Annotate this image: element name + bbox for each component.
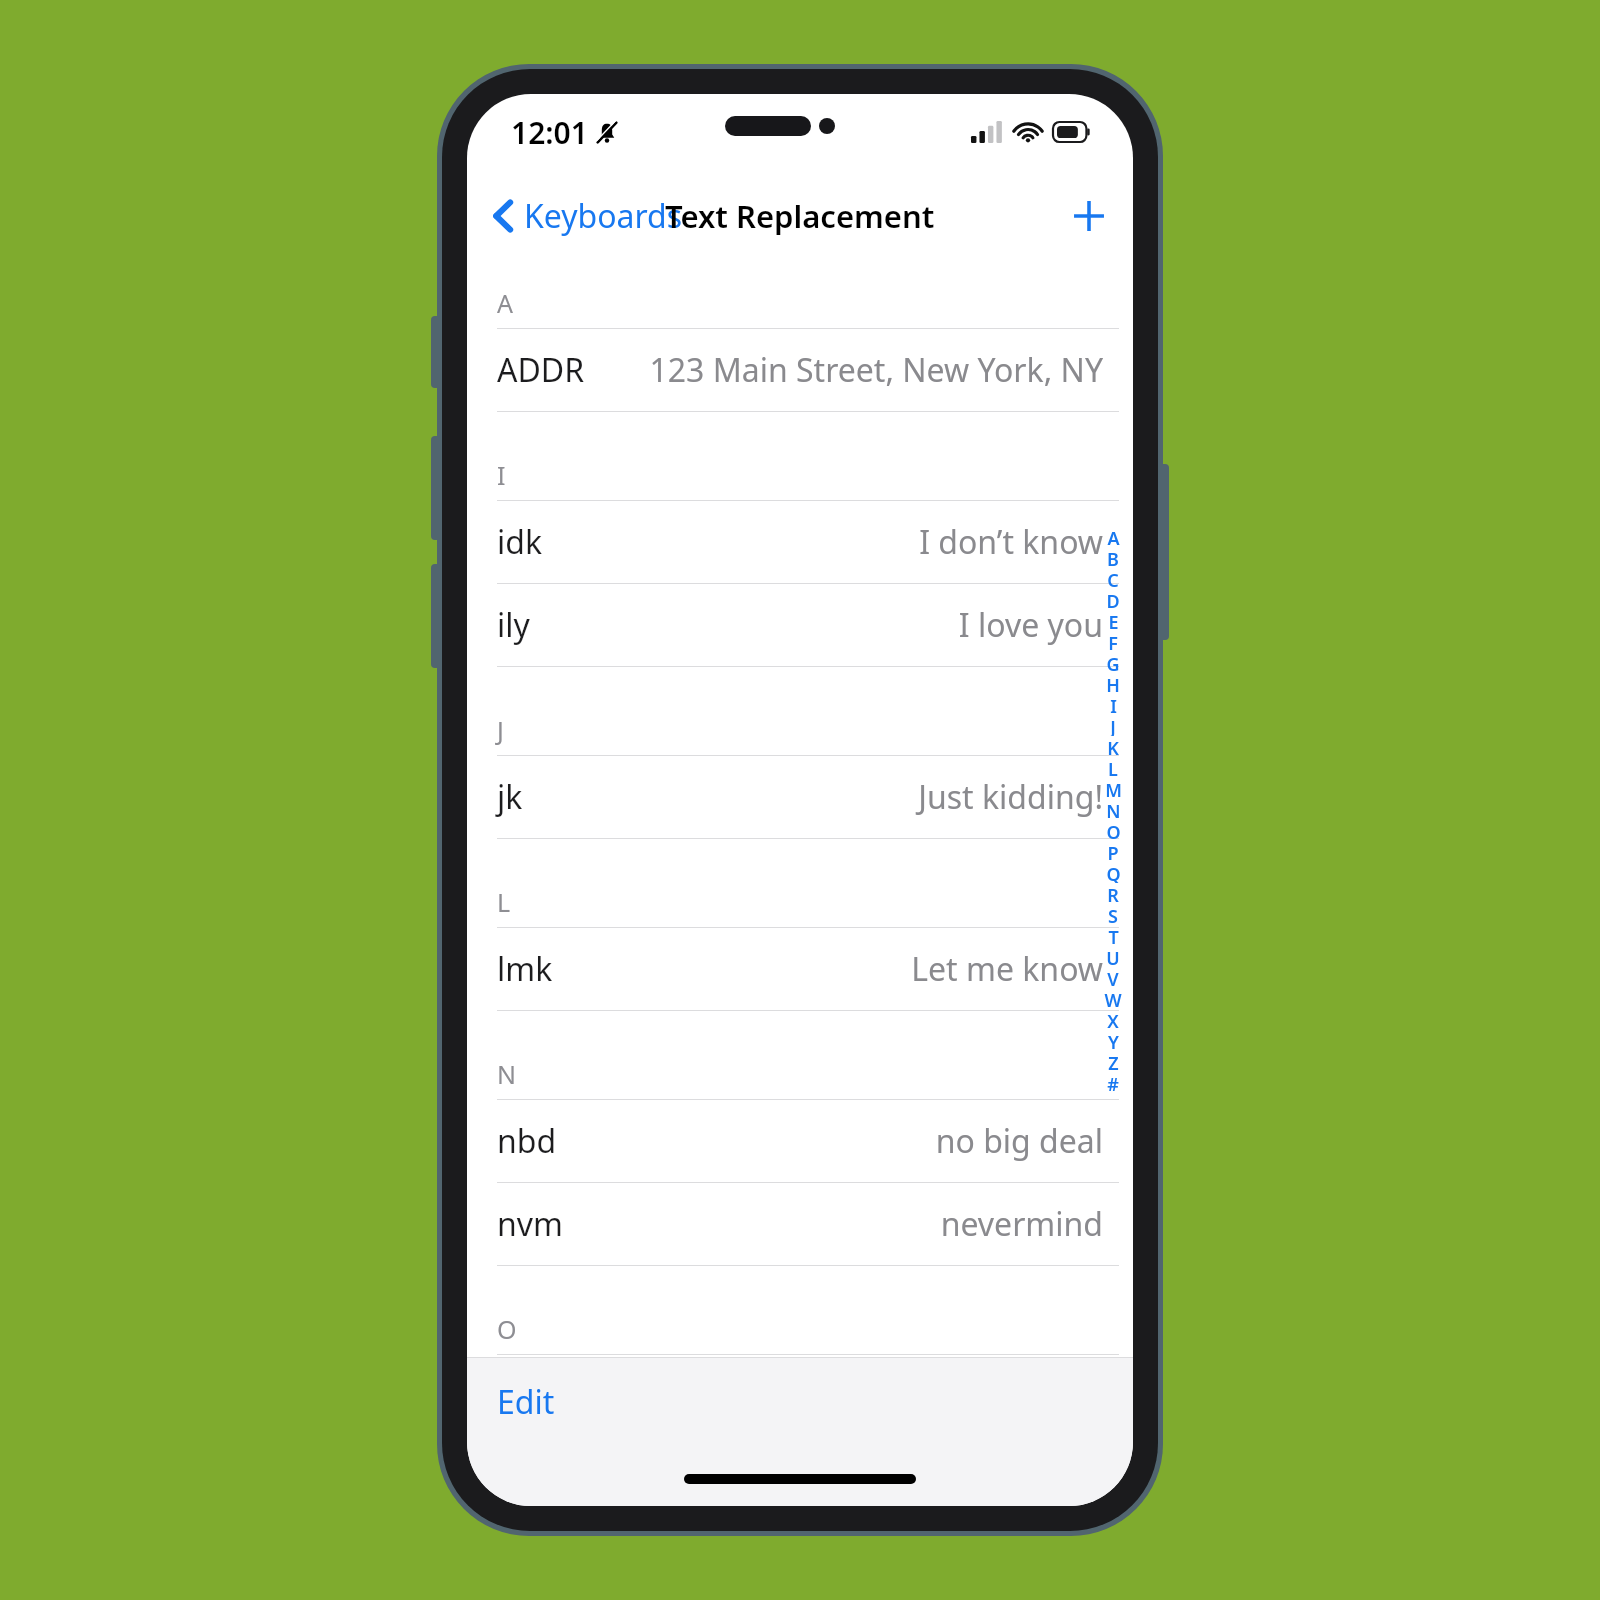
button[interactable]: jk: [467, 756, 1133, 838]
staticText: Text Replacement: [665, 195, 935, 237]
staticText: N: [497, 1057, 517, 1091]
staticText: H: [1106, 673, 1120, 694]
staticText: K: [1107, 736, 1119, 757]
staticText: 12:01: [511, 112, 588, 153]
button[interactable]: Add text replacement: [1061, 188, 1117, 244]
staticText: W: [1104, 988, 1122, 1009]
staticText: #: [1107, 1072, 1119, 1093]
staticText: I don’t know: [919, 520, 1103, 564]
staticText: I: [497, 458, 506, 492]
staticText: I: [1110, 694, 1117, 715]
button[interactable]: Keyboards: [485, 188, 691, 244]
staticText: nevermind: [940, 1202, 1103, 1246]
staticText: O: [497, 1312, 517, 1346]
staticText: L: [1108, 757, 1118, 778]
staticText: Just kidding!: [918, 775, 1103, 819]
button[interactable]: nbd: [467, 1100, 1133, 1182]
staticText: jk: [497, 775, 523, 819]
staticText: ADDR: [497, 348, 585, 392]
button[interactable]: idk: [467, 501, 1133, 583]
staticText: P: [1107, 841, 1119, 862]
button[interactable]: ily: [467, 584, 1133, 666]
staticText: T: [1108, 925, 1119, 946]
staticText: J: [1110, 715, 1116, 736]
staticText: S: [1108, 904, 1118, 925]
staticText: no big deal: [935, 1119, 1103, 1163]
staticText: O: [1106, 820, 1121, 841]
staticText: nbd: [497, 1119, 557, 1163]
button[interactable]: ADDR: [467, 329, 1133, 411]
staticText: U: [1106, 946, 1120, 967]
staticText: C: [1107, 568, 1119, 589]
staticText: Z: [1108, 1051, 1119, 1072]
staticText: Edit: [497, 1380, 555, 1424]
staticText: E: [1108, 610, 1119, 631]
button[interactable]: Edit: [485, 1372, 567, 1432]
staticText: Q: [1106, 862, 1121, 883]
staticText: Keyboards: [524, 194, 683, 238]
staticText: M: [1105, 778, 1122, 799]
staticText: nvm: [497, 1202, 563, 1246]
staticText: idk: [497, 520, 543, 564]
staticText: D: [1106, 589, 1120, 610]
staticText: ily: [497, 603, 530, 647]
staticText: I love you: [958, 603, 1103, 647]
staticText: B: [1107, 547, 1119, 568]
staticText: R: [1107, 883, 1119, 904]
staticText: A: [497, 286, 513, 320]
staticText: A: [1107, 526, 1120, 547]
staticText: L: [497, 885, 511, 919]
button[interactable]: Alphabet index: [1099, 526, 1127, 1093]
staticText: lmk: [497, 947, 553, 991]
staticText: N: [1106, 799, 1121, 820]
button[interactable]: nvm: [467, 1183, 1133, 1265]
staticText: G: [1106, 652, 1120, 673]
staticText: X: [1107, 1009, 1119, 1030]
staticText: V: [1107, 967, 1119, 988]
staticText: F: [1108, 631, 1118, 652]
staticText: 123 Main Street, New York, NY: [649, 348, 1103, 392]
staticText: Let me know: [911, 947, 1103, 991]
staticText: J: [497, 713, 504, 747]
staticText: Y: [1108, 1030, 1119, 1051]
button[interactable]: lmk: [467, 928, 1133, 1010]
